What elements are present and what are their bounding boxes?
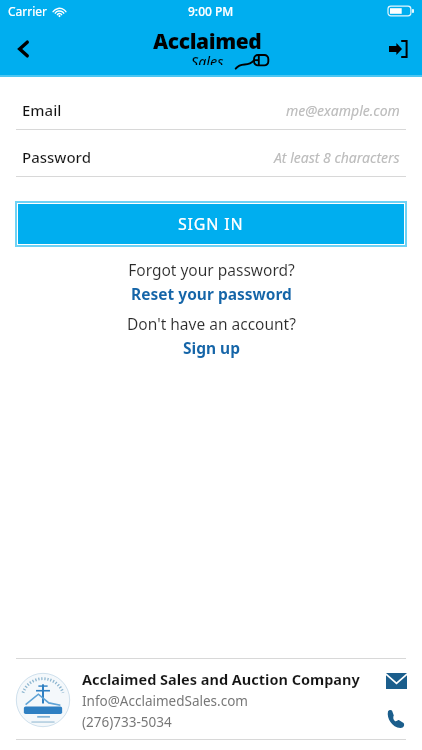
staticText: At least 8 characters xyxy=(274,148,400,167)
staticText: Reset your password xyxy=(131,283,292,304)
staticText: 9:00 PM xyxy=(188,3,234,19)
button[interactable]: Password xyxy=(0,138,422,185)
button[interactable]: SIGN IN xyxy=(18,204,404,244)
button[interactable]: Email xyxy=(0,91,422,138)
staticText: Acclaimed xyxy=(153,27,262,56)
staticText: Forgot your password? xyxy=(128,259,295,280)
staticText: SIGN IN xyxy=(178,213,244,235)
staticText: Sign up xyxy=(183,337,240,358)
button[interactable]: Sign in xyxy=(374,25,422,73)
staticText: Carrier xyxy=(8,3,48,19)
staticText: Email xyxy=(22,100,62,120)
button[interactable]: Email us xyxy=(380,665,412,697)
button[interactable]: Back xyxy=(0,25,48,73)
staticText: Don't have an account? xyxy=(127,313,296,334)
staticText: (276)733-5034 xyxy=(82,713,172,731)
button[interactable]: Call us xyxy=(380,703,412,735)
staticText: Acclaimed Sales and Auction Company xyxy=(82,669,360,689)
button[interactable]: Reset your password xyxy=(125,282,298,305)
staticText: Sales xyxy=(191,52,224,65)
button[interactable]: Sign up xyxy=(177,336,246,359)
staticText: me@example.com xyxy=(286,101,400,120)
staticText: Info@AcclaimedSales.com xyxy=(82,692,248,710)
staticText: Password xyxy=(22,147,91,167)
